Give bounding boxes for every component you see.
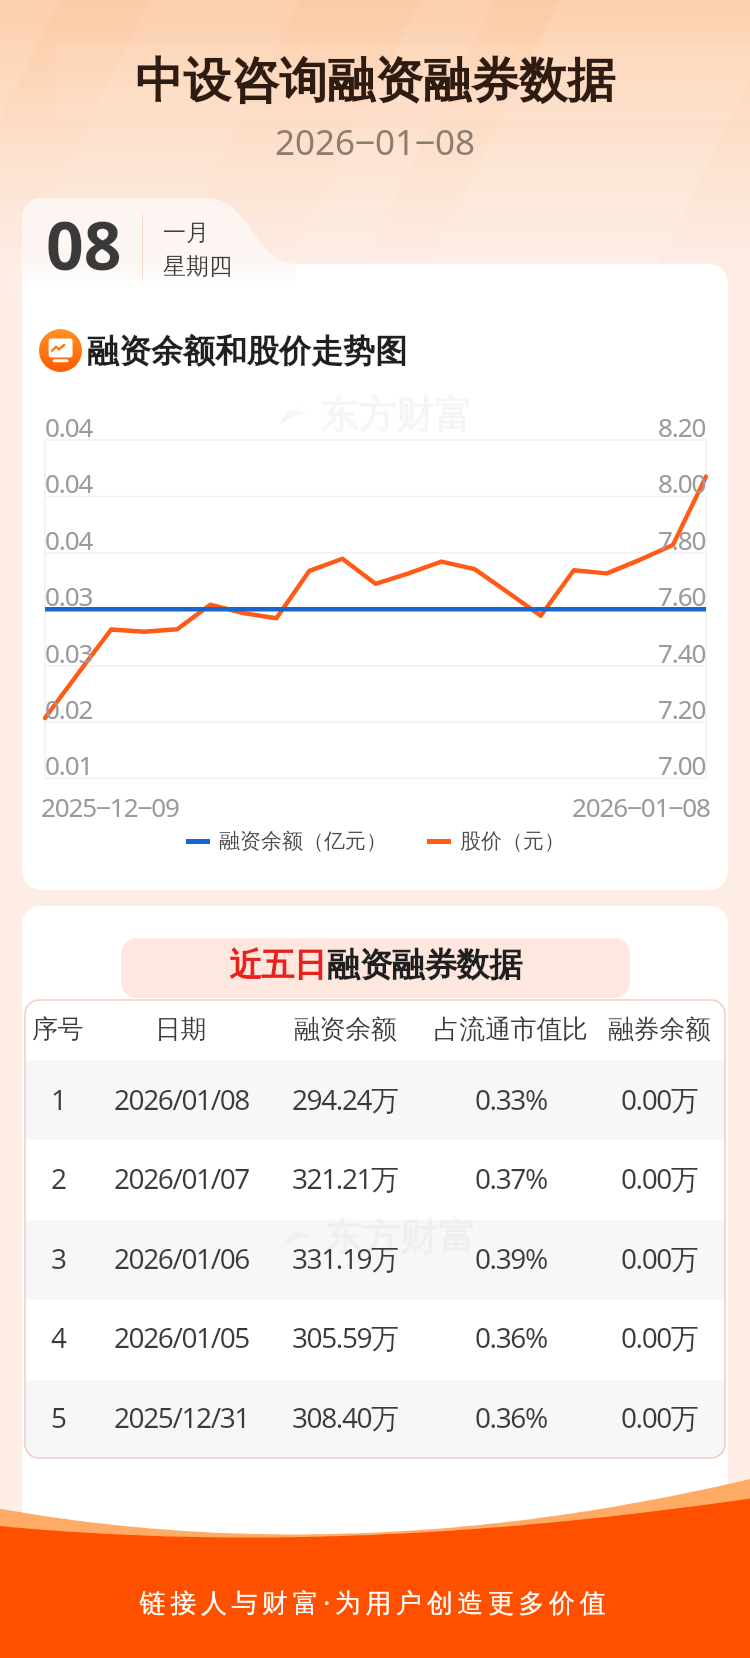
staticText: 2026‒01‒08 [0,118,750,166]
staticText: 0.37% [475,1159,547,1197]
staticText: 7.00 [658,747,706,782]
staticText: 0.04 [45,522,93,557]
staticText: 7.80 [658,522,706,557]
staticText: 3 [51,1239,66,1277]
staticText: 0.00万 [621,1398,698,1436]
staticText: 7.60 [658,578,706,613]
staticText: 日期 [155,1013,207,1046]
staticText: 融资余额和股价走势图 [87,331,407,371]
staticText: 321.21万 [292,1159,398,1197]
staticText: 331.19万 [292,1239,398,1277]
staticText: 0.36% [475,1398,547,1436]
staticText: 0.33% [475,1080,547,1118]
staticText: 股价（元） [460,828,565,854]
button[interactable] [25,1220,725,1300]
button[interactable]: 走势图 [39,328,407,373]
button[interactable] [25,1380,725,1458]
staticText: 东方财富 [324,1213,476,1261]
staticText: 2025‒12‒09 [41,789,179,824]
staticText: 序号 [32,1013,84,1046]
button[interactable] [25,1060,725,1140]
staticText: 08 [46,199,122,289]
staticText: 0.03 [45,578,93,613]
staticText: 占流通市值比 [434,1013,588,1046]
staticText: 近五日 [229,944,327,986]
staticText: 融券余额 [608,1013,711,1046]
staticText: 8.00 [658,465,706,500]
staticText: 305.59万 [292,1318,398,1356]
staticText: 294.24万 [292,1080,398,1118]
staticText: 0.04 [45,465,93,500]
staticText: 2026‒01‒08 [572,789,710,824]
staticText: 2026/01/06 [114,1239,249,1277]
staticText: 融资余额（亿元） [219,828,387,854]
staticText: 0.00万 [621,1239,698,1277]
staticText: 2026/01/08 [114,1080,249,1118]
staticText: 0.01 [45,747,93,782]
staticText: 东方财富 [320,391,472,439]
staticText: 2026/01/07 [114,1159,249,1197]
staticText: 中设咨询融资融券数据 [0,51,750,111]
staticText: 4 [51,1318,66,1356]
staticText: 链接人与财富·为用户创造更多价值 [0,1584,750,1620]
staticText: 0.00万 [621,1159,698,1197]
staticText: 0.02 [45,691,93,726]
staticText: 融资余额 [294,1013,397,1046]
staticText: 5 [51,1398,66,1436]
staticText: 1 [51,1080,66,1118]
button[interactable] [25,1140,725,1220]
staticText: 0.04 [45,409,93,444]
button[interactable] [25,1300,725,1380]
staticText: 融资融券数据 [327,944,522,986]
staticText: 0.03 [45,635,93,670]
staticText: 星期四 [163,252,232,281]
staticText: 2026/01/05 [114,1318,249,1356]
staticText: 0.00万 [621,1318,698,1356]
staticText: 0.00万 [621,1080,698,1118]
staticText: 7.20 [658,691,706,726]
other: 走势图 [39,329,82,372]
staticText: 0.36% [475,1318,547,1356]
staticText: 0.39% [475,1239,547,1277]
staticText: 2025/12/31 [114,1398,249,1436]
staticText: 2 [51,1159,66,1197]
staticText: 一月 [163,218,209,247]
staticText: 308.40万 [292,1398,398,1436]
staticText: 7.40 [658,635,706,670]
staticText: 8.20 [658,409,706,444]
